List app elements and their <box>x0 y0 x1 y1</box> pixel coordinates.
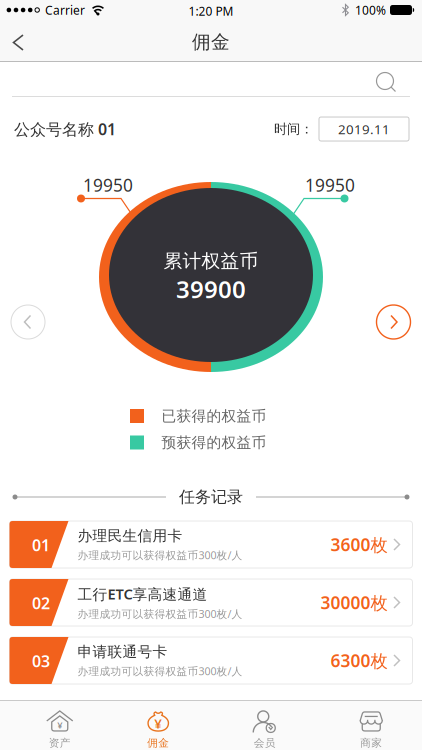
button[interactable]: ¥ <box>105 701 211 749</box>
staticText: 任务记录 <box>179 487 243 507</box>
staticText: 佣金 <box>147 736 169 749</box>
button[interactable]: Search <box>373 69 401 97</box>
staticText: 办理成功可以获得权益币300枚/人 <box>77 607 242 621</box>
staticText: 申请联通号卡 <box>77 643 167 661</box>
staticText: 02 <box>32 592 50 614</box>
staticText: 办理成功可以获得权益币300枚/人 <box>77 548 242 562</box>
staticText: 03 <box>32 650 50 672</box>
staticText: 公众号名称 01 <box>14 118 116 140</box>
staticText: 已获得的权益币 <box>161 407 266 425</box>
staticText: 资产 <box>49 736 71 749</box>
button[interactable]: Next <box>376 305 410 339</box>
staticText: 100% <box>355 2 386 18</box>
button[interactable]: 商家 <box>316 701 422 749</box>
staticText: ¥ <box>154 714 162 732</box>
staticText: 累计权益币 <box>163 249 258 272</box>
staticText: 19950 <box>83 173 133 196</box>
staticText: 1:20 PM <box>188 3 233 19</box>
button[interactable]: Back <box>0 20 44 61</box>
button[interactable]: 03 <box>9 637 412 684</box>
staticText: 01 <box>32 534 50 556</box>
staticText: 2019.11 <box>338 120 390 138</box>
staticText: 时间： <box>274 121 313 137</box>
button[interactable]: ¥ <box>0 701 105 749</box>
staticText: 会员 <box>254 736 276 749</box>
staticText: 3600枚 <box>330 533 387 556</box>
staticText: 商家 <box>360 736 382 749</box>
staticText: 30000枚 <box>320 591 387 614</box>
staticText: 6300枚 <box>330 649 387 672</box>
staticText: 19950 <box>305 173 355 196</box>
staticText: 办理成功可以获得权益币300枚/人 <box>77 664 242 678</box>
staticText: 工行ETC享高速通道 <box>77 584 207 604</box>
staticText: Carrier <box>45 2 85 18</box>
button[interactable]: 01 <box>9 521 412 568</box>
staticText: 预获得的权益币 <box>161 433 266 451</box>
staticText: 办理民生信用卡 <box>77 527 182 545</box>
button[interactable]: Previous <box>11 305 45 339</box>
button[interactable]: 会员 <box>211 701 316 749</box>
button[interactable]: 02 <box>9 579 412 626</box>
staticText: 39900 <box>176 273 246 305</box>
staticText: 佣金 <box>192 30 230 53</box>
button[interactable]: 2019.11 <box>319 117 409 141</box>
staticText: ¥ <box>57 719 62 731</box>
